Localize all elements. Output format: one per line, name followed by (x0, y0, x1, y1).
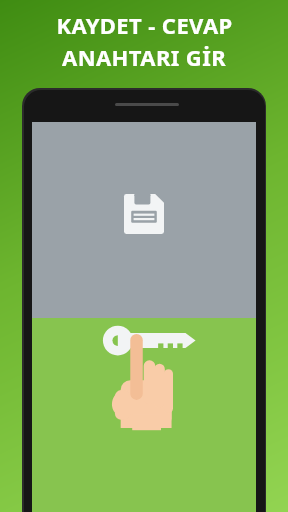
button[interactable]: Save (32, 122, 256, 318)
staticText: KAYDET - CEVAP (56, 10, 233, 40)
other: Enter answer key (101, 318, 197, 428)
button[interactable]: Enter answer key (32, 318, 256, 512)
staticText: ANAHTARI GİR (62, 42, 226, 72)
other: Save (124, 194, 164, 234)
